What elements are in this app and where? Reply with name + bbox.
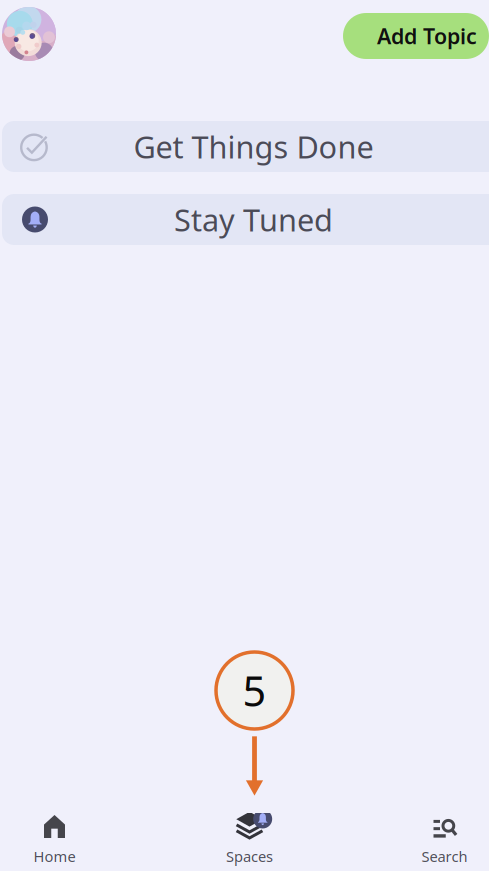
button[interactable]: Add Topic: [343, 9, 489, 59]
staticText: Spaces: [226, 846, 273, 866]
button[interactable]: Get Things Done: [2, 121, 489, 172]
staticText: 5: [242, 663, 266, 718]
button[interactable]: Stay Tuned: [2, 194, 489, 245]
button[interactable]: Search: [347, 813, 489, 871]
staticText: Search: [421, 846, 467, 866]
button[interactable]: Profile: [0, 7, 56, 61]
staticText: Get Things Done: [133, 126, 373, 167]
staticText: Stay Tuned: [174, 199, 333, 240]
button[interactable]: Spaces: [152, 813, 347, 871]
button[interactable]: Home: [0, 813, 152, 871]
staticText: Home: [33, 846, 75, 866]
staticText: Add Topic: [377, 22, 477, 50]
